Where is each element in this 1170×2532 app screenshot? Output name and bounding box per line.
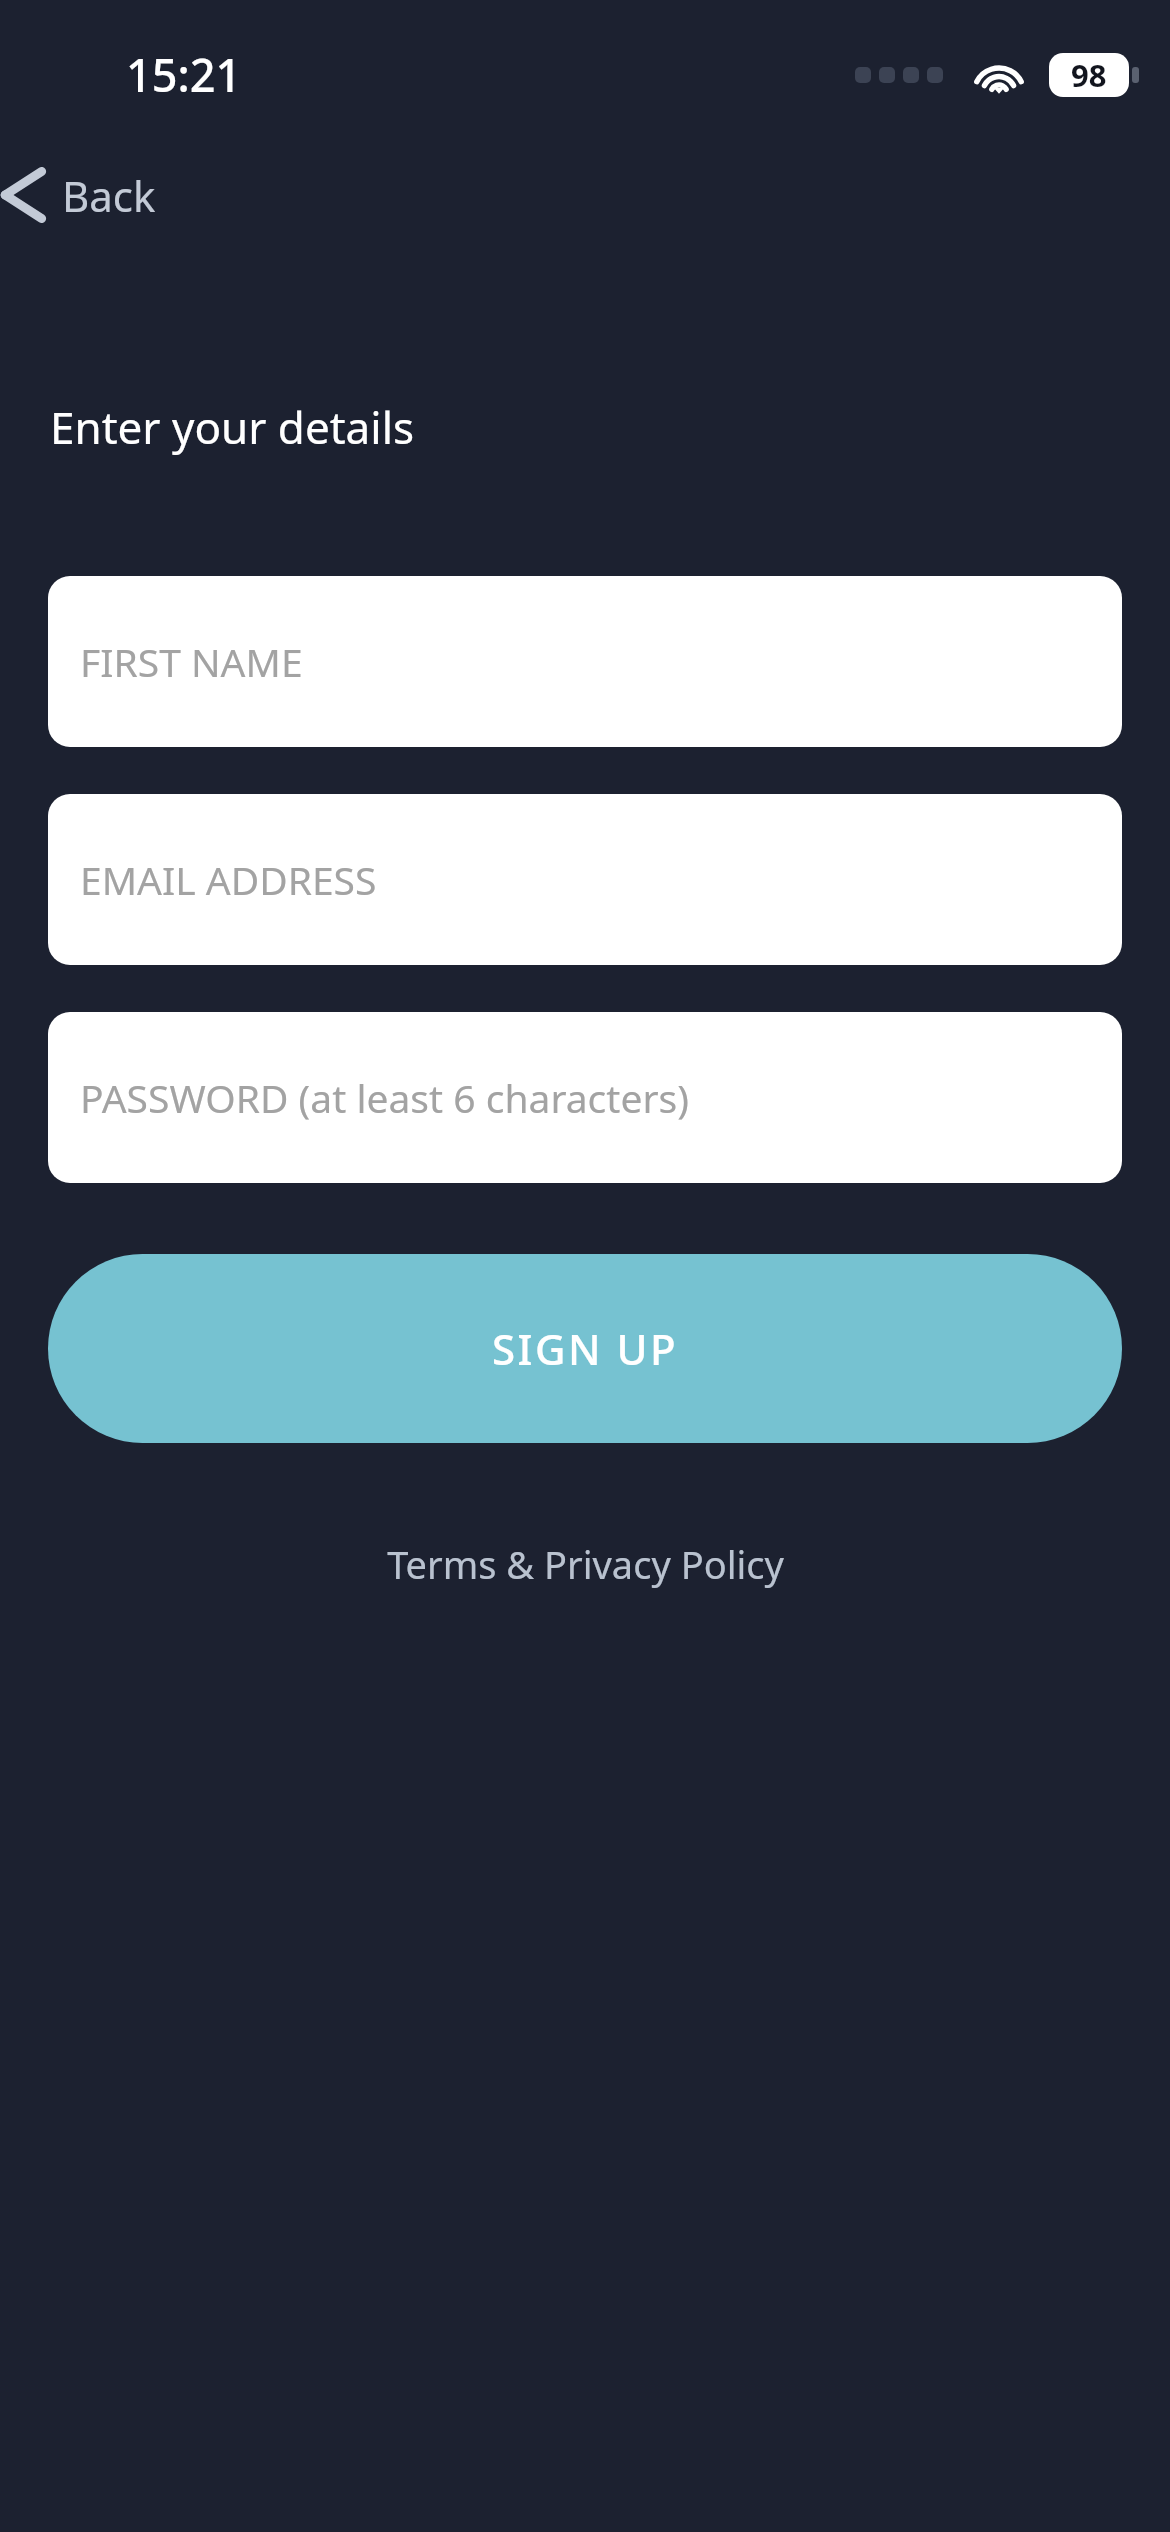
staticText: EMAIL ADDRESS <box>80 853 377 906</box>
button[interactable]: PASSWORD (at least 6 characters) <box>48 1012 1122 1183</box>
staticText: 98 <box>1071 54 1107 96</box>
staticText: Back <box>62 167 156 224</box>
staticText: Enter your details <box>50 397 415 457</box>
staticText: FIRST NAME <box>80 635 303 688</box>
button[interactable]: Terms & Privacy Policy <box>371 1530 800 1598</box>
button[interactable]: Back <box>0 145 156 245</box>
staticText: 15:21 <box>126 44 242 105</box>
other: Back <box>0 164 52 226</box>
staticText: SIGN UP <box>492 1320 679 1377</box>
staticText: PASSWORD (at least 6 characters) <box>80 1071 689 1124</box>
button[interactable]: FIRST NAME <box>48 576 1122 747</box>
button[interactable]: EMAIL ADDRESS <box>48 794 1122 965</box>
button[interactable]: SIGN UP <box>48 1254 1122 1443</box>
